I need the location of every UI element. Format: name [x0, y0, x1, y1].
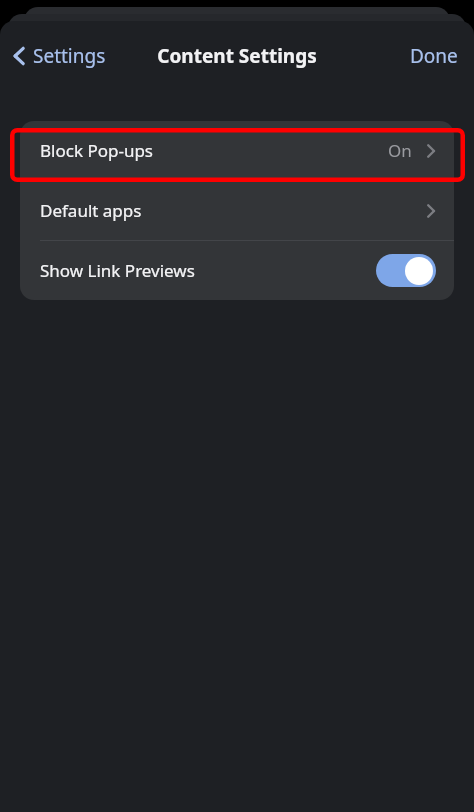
staticText: On	[388, 139, 412, 162]
button[interactable]: Settings	[6, 37, 116, 75]
staticText: Show Link Previews	[40, 259, 195, 282]
staticText: Done	[410, 43, 458, 69]
other: Open	[426, 142, 436, 160]
staticText: Settings	[33, 43, 106, 69]
staticText: Default apps	[40, 199, 142, 222]
other: Open	[426, 202, 436, 220]
button[interactable]: Block Pop-ups	[20, 121, 454, 180]
button[interactable]: Default apps	[20, 181, 454, 240]
button[interactable]: Show Link Previews toggle, on	[376, 254, 436, 287]
staticText: Block Pop-ups	[40, 139, 153, 162]
button[interactable]: Done	[402, 37, 466, 75]
button[interactable]: Show Link Previews	[20, 241, 454, 300]
staticText: Content Settings	[157, 43, 317, 69]
